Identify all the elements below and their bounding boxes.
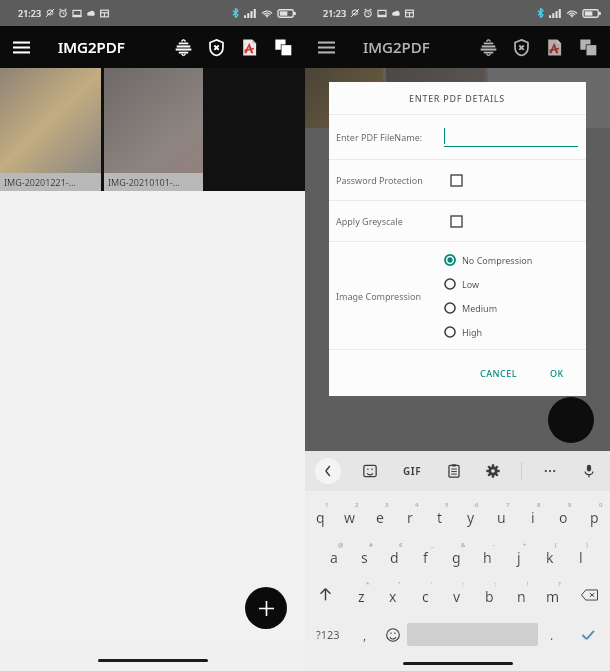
button[interactable]: Open navigation drawer	[305, 26, 347, 68]
button[interactable]: Password Protection	[329, 160, 586, 200]
button[interactable]: Sort	[472, 31, 505, 64]
button[interactable]: 3	[365, 496, 395, 536]
button[interactable]: Select all	[571, 30, 606, 65]
staticText: h	[483, 548, 492, 567]
button[interactable]: )	[565, 536, 596, 575]
button[interactable]: @	[319, 536, 349, 575]
button[interactable]: 8	[517, 496, 548, 536]
button[interactable]: 1	[305, 496, 335, 536]
button[interactable]: ?123	[305, 614, 351, 655]
button[interactable]: 7	[486, 496, 517, 536]
button[interactable]: 6	[455, 496, 486, 536]
staticText: !	[527, 580, 529, 588]
button[interactable]: Back	[315, 458, 341, 484]
staticText: o	[559, 508, 568, 527]
button[interactable]: Done	[566, 614, 610, 655]
button[interactable]: High	[444, 320, 586, 344]
staticText: u	[497, 508, 506, 527]
staticText: p	[590, 508, 599, 527]
button[interactable]: Add images	[245, 587, 287, 629]
button[interactable]: 0	[579, 496, 610, 536]
staticText: 3	[385, 501, 389, 509]
staticText: High	[462, 326, 483, 338]
button[interactable]: ?	[537, 575, 569, 614]
button[interactable]: No Compression	[444, 248, 586, 272]
button[interactable]: 2	[335, 496, 365, 536]
staticText: m	[546, 587, 560, 606]
staticText: q	[316, 508, 325, 527]
staticText: OK	[550, 367, 564, 379]
staticText: ,	[363, 627, 367, 643]
staticText: r	[407, 508, 413, 527]
button[interactable]: Low	[444, 272, 586, 296]
staticText: _	[431, 541, 434, 549]
button[interactable]: :	[441, 575, 473, 614]
button[interactable]: !	[505, 575, 537, 614]
staticText: f	[423, 548, 428, 567]
button[interactable]: Apply Greyscale	[329, 201, 586, 241]
button[interactable]: Delete	[569, 575, 610, 614]
staticText: Password Protection	[336, 174, 451, 186]
button[interactable]: Comma	[351, 614, 379, 655]
button[interactable]: Enter PDF FileName:	[329, 115, 586, 159]
button[interactable]: +	[503, 536, 534, 575]
button[interactable]: Settings	[482, 460, 504, 482]
staticText: 4	[415, 501, 419, 509]
button[interactable]: Medium	[444, 296, 586, 320]
button[interactable]: Security	[200, 31, 233, 64]
button[interactable]: €	[379, 536, 410, 575]
button[interactable]: Security	[505, 31, 538, 64]
staticText: &	[461, 541, 466, 549]
staticText: x	[389, 587, 397, 606]
staticText: a	[330, 548, 338, 567]
button[interactable]: #	[349, 536, 379, 575]
button[interactable]: Shift	[305, 575, 345, 614]
button[interactable]: 9	[548, 496, 579, 536]
button[interactable]: Emoji	[379, 614, 407, 655]
staticText: IMG-20210101-…	[108, 176, 180, 188]
staticText: s	[361, 548, 368, 567]
staticText: *	[366, 580, 370, 588]
button[interactable]: ;	[473, 575, 505, 614]
staticText: -	[493, 541, 495, 549]
staticText: (	[555, 541, 557, 549]
staticText: Enter PDF FileName:	[336, 131, 444, 143]
button[interactable]: GIF	[399, 460, 426, 482]
button[interactable]: "	[377, 575, 409, 614]
button[interactable]: IMG-20210101-…	[104, 68, 203, 191]
staticText: Apply Greyscale	[336, 215, 451, 227]
button[interactable]: OK	[540, 360, 574, 386]
staticText: t	[437, 508, 443, 527]
button[interactable]: *	[345, 575, 377, 614]
button[interactable]: Clipboard	[443, 460, 465, 482]
button[interactable]: Period	[538, 614, 566, 655]
button[interactable]: _	[410, 536, 441, 575]
button[interactable]: CANCEL	[470, 360, 528, 386]
button[interactable]: More options	[539, 460, 561, 482]
staticText: "	[398, 580, 401, 588]
button[interactable]: IMG-20201221-…	[0, 68, 101, 191]
staticText: Medium	[462, 302, 498, 314]
button[interactable]: 5	[425, 496, 455, 536]
staticText: 2	[355, 501, 359, 509]
button[interactable]: Voice input	[578, 460, 600, 482]
button[interactable]: Select all	[266, 30, 301, 65]
staticText: 7	[506, 501, 510, 509]
staticText: w	[344, 508, 356, 527]
button[interactable]: Create PDF	[538, 31, 571, 64]
button[interactable]: Open navigation drawer	[0, 26, 42, 68]
button[interactable]: &	[441, 536, 472, 575]
staticText: 1	[325, 501, 329, 509]
button[interactable]: Stickers	[359, 460, 381, 482]
button[interactable]: Sort	[167, 31, 200, 64]
staticText: k	[546, 548, 554, 567]
button[interactable]: '	[409, 575, 441, 614]
button[interactable]: Create PDF	[233, 31, 266, 64]
staticText: e	[376, 508, 384, 527]
button[interactable]: -	[472, 536, 503, 575]
button[interactable]: (	[534, 536, 565, 575]
staticText: 6	[475, 501, 479, 509]
button[interactable]: 4	[395, 496, 425, 536]
staticText: Image Compression	[336, 290, 422, 302]
